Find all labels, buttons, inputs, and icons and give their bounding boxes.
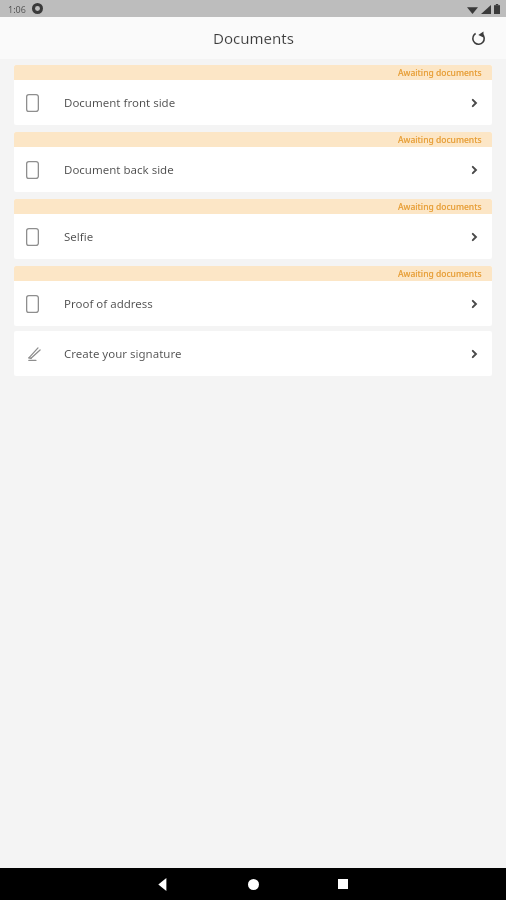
staticText: Selfie — [64, 229, 94, 245]
button[interactable]: Recent apps — [298, 868, 388, 900]
button[interactable]: Refresh — [462, 22, 494, 54]
staticText: Proof of address — [64, 296, 153, 312]
staticText: Document front side — [64, 95, 176, 111]
button[interactable]: Home — [208, 868, 298, 900]
button[interactable]: Awaiting documents — [14, 199, 492, 259]
staticText: Awaiting documents — [398, 67, 482, 79]
button[interactable]: Back — [118, 868, 208, 900]
staticText: 1:06 — [8, 3, 26, 15]
staticText: Awaiting documents — [398, 134, 482, 146]
staticText: Awaiting documents — [398, 268, 482, 280]
staticText: Awaiting documents — [398, 201, 482, 213]
button[interactable]: Awaiting documents — [14, 132, 492, 192]
staticText: Documents — [213, 28, 294, 48]
button[interactable]: Awaiting documents — [14, 65, 492, 125]
staticText: Document back side — [64, 162, 174, 178]
button[interactable]: Awaiting documents — [14, 266, 492, 326]
button[interactable]: Create your signature — [14, 331, 492, 376]
staticText: Create your signature — [64, 346, 182, 362]
